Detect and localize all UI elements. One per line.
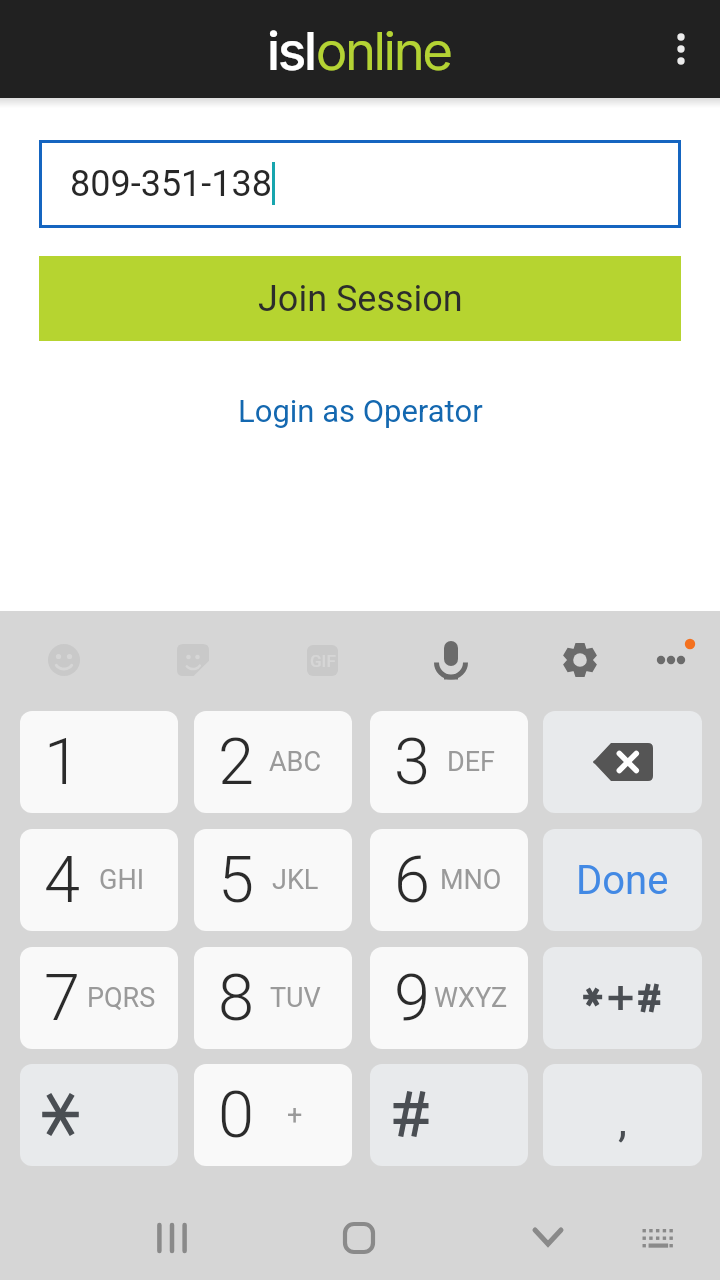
staticText: TUV: [270, 982, 321, 1014]
staticText: 3: [394, 724, 431, 800]
staticText: ,: [618, 1093, 628, 1147]
button[interactable]: 7: [20, 947, 178, 1049]
button[interactable]: More options: [622, 611, 720, 709]
button[interactable]: 9: [370, 947, 528, 1049]
staticText: Join Session: [258, 278, 463, 320]
staticText: 4: [44, 842, 81, 918]
button[interactable]: Login as Operator: [216, 386, 505, 436]
button[interactable]: GIF: [273, 611, 371, 709]
staticText: DEF: [447, 746, 495, 778]
button[interactable]: Backspace: [543, 711, 702, 813]
button[interactable]: Keyboard settings: [531, 611, 629, 709]
button[interactable]: 4: [20, 829, 178, 931]
button[interactable]: 0: [194, 1064, 352, 1166]
button[interactable]: Join Session: [39, 256, 681, 341]
button[interactable]: 8: [194, 947, 352, 1049]
button[interactable]: 3: [370, 711, 528, 813]
button[interactable]: Stickers: [144, 611, 242, 709]
staticText: ABC: [269, 746, 322, 778]
staticText: WXYZ: [434, 982, 508, 1014]
button[interactable]: 1: [20, 711, 178, 813]
staticText: 8: [218, 960, 255, 1036]
staticText: JKL: [272, 864, 319, 896]
staticText: 7: [44, 960, 81, 1036]
staticText: 6: [394, 842, 431, 918]
button[interactable]: Star plus hash: [543, 947, 702, 1049]
staticText: 809-351-138: [70, 163, 272, 205]
staticText: 5: [218, 842, 255, 918]
staticText: 2: [218, 724, 255, 800]
staticText: +: [287, 1099, 303, 1131]
staticText: 0: [218, 1077, 255, 1153]
button[interactable]: Recents: [127, 1198, 217, 1278]
staticText: GHI: [99, 864, 144, 896]
staticText: 1: [44, 724, 81, 800]
button[interactable]: Star: [20, 1064, 178, 1166]
staticText: online: [317, 19, 452, 83]
staticText: Login as Operator: [238, 393, 483, 429]
button[interactable]: Home: [314, 1198, 404, 1278]
button[interactable]: 2: [194, 711, 352, 813]
button[interactable]: Hide keyboard: [503, 1198, 593, 1278]
staticText: GIF: [310, 651, 336, 671]
staticText: 9: [394, 960, 431, 1036]
button[interactable]: Done: [543, 829, 702, 931]
button[interactable]: More options: [642, 0, 720, 98]
button[interactable]: Voice input: [402, 611, 500, 709]
button[interactable]: 809-351-138: [39, 140, 681, 228]
staticText: PQRS: [87, 982, 156, 1014]
staticText: isl: [268, 19, 317, 83]
button[interactable]: Hash: [370, 1064, 528, 1166]
button[interactable]: Comma: [543, 1064, 702, 1166]
button[interactable]: Change keyboard: [613, 1198, 703, 1278]
button[interactable]: Emoji: [15, 611, 113, 709]
staticText: Done: [576, 857, 669, 904]
staticText: MNO: [440, 864, 502, 896]
button[interactable]: 5: [194, 829, 352, 931]
button[interactable]: 6: [370, 829, 528, 931]
